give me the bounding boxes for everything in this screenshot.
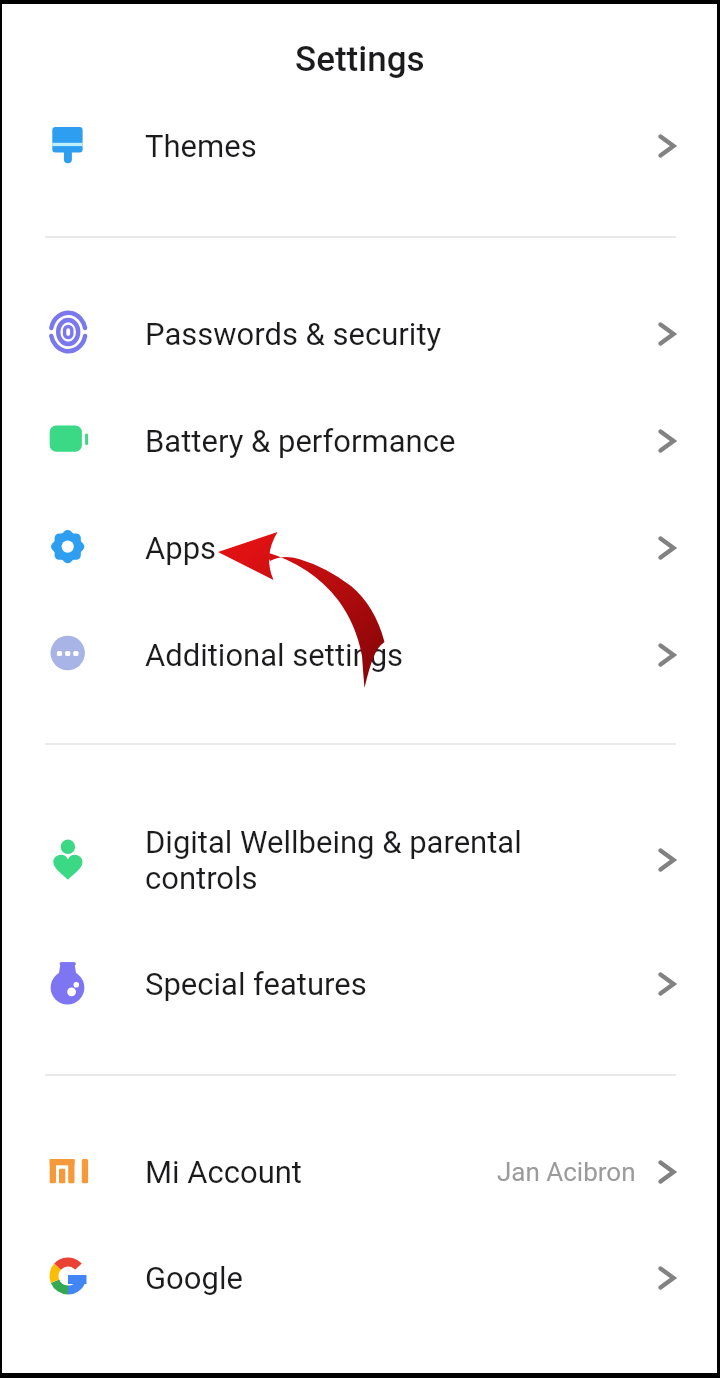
button[interactable]: Google — [0, 1224, 720, 1331]
button[interactable]: Mi Account — [0, 1118, 720, 1225]
staticText: Battery & performance — [145, 423, 456, 459]
staticText: Themes — [145, 128, 257, 164]
button[interactable]: Special features — [0, 930, 720, 1037]
staticText: Settings — [295, 39, 425, 80]
staticText: Google — [145, 1260, 243, 1296]
button[interactable]: Battery & performance — [0, 387, 720, 494]
staticText: Jan Acibron — [497, 1157, 636, 1187]
staticText: Mi Account — [145, 1154, 302, 1190]
staticText: Apps — [145, 530, 217, 566]
staticText: Additional settings — [145, 637, 404, 673]
button[interactable]: Digital Wellbeing & parental controls — [0, 788, 720, 931]
staticText: Digital Wellbeing & parental controls — [145, 824, 522, 896]
button[interactable]: Passwords & security — [0, 280, 720, 387]
staticText: Passwords & security — [145, 316, 442, 352]
button[interactable]: Themes — [0, 92, 720, 199]
button[interactable]: Apps — [0, 494, 720, 601]
staticText: Special features — [145, 966, 367, 1002]
button[interactable]: Additional settings — [0, 601, 720, 708]
